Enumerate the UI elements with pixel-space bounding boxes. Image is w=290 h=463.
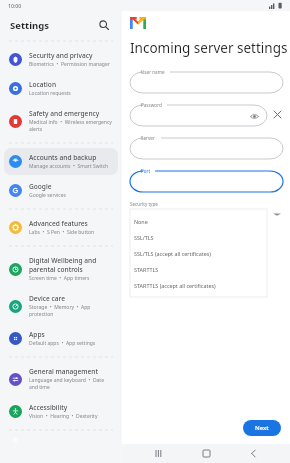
button[interactable]: Expand [273, 212, 281, 217]
staticText: Safety and emergency [29, 109, 100, 118]
staticText: SSL/TLS (accept all certificates) [134, 250, 211, 257]
button[interactable]: User name [130, 68, 283, 94]
staticText: Server [141, 135, 155, 141]
staticText: Device care [29, 294, 65, 303]
staticText: Google [29, 182, 52, 191]
button[interactable]: Digital Wellbeing and parental controls [4, 251, 118, 287]
staticText: Manage accounts • Smart Switch [29, 163, 109, 170]
button[interactable]: Home [196, 444, 216, 463]
button[interactable]: Password [130, 101, 267, 127]
button[interactable]: Recents [149, 444, 169, 463]
staticText: Port [141, 168, 151, 174]
staticText: Medical info • Wireless emergency alerts [29, 119, 113, 133]
staticText: Screen time • App timers [29, 275, 90, 282]
staticText: Security and privacy [29, 51, 93, 60]
button[interactable]: STARTTLS [130, 261, 267, 277]
button[interactable]: Device care [4, 289, 118, 323]
button[interactable]: Accessibility [4, 398, 118, 425]
staticText: Default apps • App settings [29, 340, 96, 347]
staticText: Apps [29, 330, 45, 339]
button[interactable]: Google [4, 177, 118, 204]
staticText: Advanced features [29, 219, 88, 228]
button[interactable]: STARTTLS (accept all certificates) [130, 277, 267, 293]
staticText: User name [141, 69, 165, 75]
button[interactable]: Clear [271, 108, 283, 120]
button[interactable]: Search [96, 17, 112, 33]
staticText: General management [29, 367, 98, 376]
staticText: STARTTLS (accept all certificates) [134, 282, 216, 289]
button[interactable]: Next [243, 420, 281, 436]
button[interactable]: General management [4, 362, 118, 396]
button[interactable]: Safety and emergency [4, 104, 118, 138]
staticText: Labs • S Pen • Side button [29, 229, 95, 236]
button[interactable]: Show password [249, 111, 259, 121]
button[interactable]: Apps [4, 325, 118, 352]
staticText: Incoming server settings [130, 39, 288, 57]
button[interactable]: Back [243, 444, 263, 463]
staticText: Settings [10, 19, 49, 32]
staticText: Storage • Memory • App protection [29, 304, 113, 318]
button[interactable]: SSL/TLS (accept all certificates) [130, 245, 267, 261]
staticText: Security type [130, 201, 158, 207]
staticText: Vision • Hearing • Dexterity [29, 413, 98, 420]
staticText: None [134, 218, 148, 225]
button[interactable]: Advanced features [4, 214, 118, 241]
button[interactable]: None [130, 209, 267, 297]
button[interactable]: SSL/TLS [130, 229, 267, 245]
staticText: Location [29, 80, 57, 89]
staticText: 10:00 [8, 2, 22, 9]
staticText: Biometrics • Permission manager [29, 61, 110, 68]
staticText: Digital Wellbeing and parental controls [29, 256, 113, 274]
staticText: Accounts and backup [29, 153, 97, 162]
staticText: Accessibility [29, 403, 68, 412]
staticText: Next [255, 424, 269, 432]
staticText: Password [141, 102, 162, 108]
button[interactable]: Location [4, 75, 118, 102]
staticText: SSL/TLS [134, 234, 154, 241]
staticText: Location requests [29, 90, 71, 97]
staticText: Language and keyboard • Date and time [29, 377, 113, 391]
button[interactable]: Accounts and backup [4, 148, 118, 175]
button[interactable]: Port [130, 167, 283, 193]
button[interactable]: Server [130, 134, 283, 160]
staticText: STARTTLS [134, 266, 159, 273]
staticText: Google services [29, 192, 66, 199]
button[interactable]: Security and privacy [4, 46, 118, 73]
button[interactable]: None [130, 213, 267, 229]
